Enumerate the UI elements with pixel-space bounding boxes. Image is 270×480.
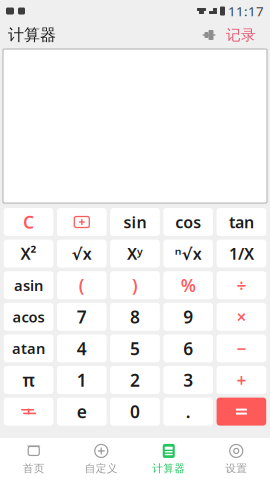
- staticText: asin: [14, 275, 43, 295]
- staticText: (: [79, 274, 85, 297]
- button[interactable]: 6: [163, 334, 213, 362]
- staticText: atan: [12, 339, 45, 358]
- button[interactable]: 记录: [220, 24, 262, 46]
- button[interactable]: √x: [57, 240, 107, 268]
- button[interactable]: ×: [217, 303, 266, 331]
- button[interactable]: 2: [110, 366, 160, 394]
- button[interactable]: 首页: [0, 438, 67, 480]
- staticText: 7: [77, 305, 87, 328]
- button[interactable]: acos: [4, 303, 53, 331]
- button[interactable]: tan: [217, 208, 266, 236]
- staticText: 计算器: [152, 462, 185, 475]
- staticText: 记录: [226, 26, 256, 44]
- button[interactable]: 1/X: [217, 240, 266, 268]
- button[interactable]: +: [217, 366, 266, 394]
- staticText: acos: [13, 307, 45, 327]
- staticText: 4: [77, 337, 87, 360]
- staticText: .: [186, 400, 191, 423]
- staticText: 9: [183, 305, 193, 328]
- staticText: π: [23, 368, 35, 391]
- button[interactable]: 计算器: [135, 438, 202, 480]
- button[interactable]: e: [57, 398, 107, 426]
- button[interactable]: 9: [163, 303, 213, 331]
- staticText: ÷: [236, 274, 246, 297]
- staticText: 首页: [23, 462, 45, 475]
- staticText: 5: [130, 337, 140, 360]
- button[interactable]: X²: [4, 240, 53, 268]
- staticText: 11:17: [228, 2, 264, 20]
- button[interactable]: π: [4, 366, 53, 394]
- button[interactable]: cos: [163, 208, 213, 236]
- staticText: 1: [77, 368, 87, 391]
- staticText: C: [23, 210, 34, 233]
- staticText: sin: [123, 211, 146, 233]
- staticText: ×: [236, 305, 246, 328]
- button[interactable]: =: [217, 398, 266, 426]
- button[interactable]: Xʸ: [110, 240, 160, 268]
- button[interactable]: 3: [163, 366, 213, 394]
- button[interactable]: 设置: [202, 438, 270, 480]
- staticText: −: [236, 337, 246, 360]
- staticText: 计算器: [8, 25, 56, 45]
- staticText: cos: [175, 211, 201, 233]
- staticText: 2: [130, 368, 140, 391]
- button[interactable]: asin: [4, 271, 53, 299]
- button[interactable]: ): [110, 271, 160, 299]
- button[interactable]: atan: [4, 334, 53, 362]
- button[interactable]: (: [57, 271, 107, 299]
- button[interactable]: Mute: [198, 24, 220, 46]
- staticText: +: [236, 368, 246, 391]
- staticText: 3: [183, 368, 193, 391]
- staticText: ): [132, 274, 138, 297]
- staticText: 0: [130, 400, 140, 423]
- staticText: Xʸ: [127, 243, 143, 264]
- button[interactable]: 自定义: [67, 438, 135, 480]
- button[interactable]: C: [4, 208, 53, 236]
- button[interactable]: Swap: [4, 398, 53, 426]
- button[interactable]: 8: [110, 303, 160, 331]
- staticText: e: [77, 400, 87, 423]
- staticText: %: [181, 274, 196, 297]
- staticText: 设置: [225, 462, 247, 475]
- button[interactable]: 1: [57, 366, 107, 394]
- staticText: 自定义: [85, 462, 118, 475]
- button[interactable]: 0: [110, 398, 160, 426]
- staticText: 6: [183, 337, 193, 360]
- staticText: 8: [130, 305, 140, 328]
- button[interactable]: .: [163, 398, 213, 426]
- button[interactable]: 4: [57, 334, 107, 362]
- button[interactable]: %: [163, 271, 213, 299]
- staticText: ⁿ√x: [175, 243, 202, 264]
- button[interactable]: Backspace: [57, 208, 107, 236]
- staticText: tan: [229, 211, 254, 233]
- button[interactable]: sin: [110, 208, 160, 236]
- button[interactable]: 7: [57, 303, 107, 331]
- button[interactable]: ÷: [217, 271, 266, 299]
- staticText: 1/X: [229, 243, 254, 264]
- button[interactable]: 5: [110, 334, 160, 362]
- staticText: X²: [21, 243, 37, 264]
- button[interactable]: −: [217, 334, 266, 362]
- staticText: √x: [72, 243, 92, 264]
- button[interactable]: ⁿ√x: [163, 240, 213, 268]
